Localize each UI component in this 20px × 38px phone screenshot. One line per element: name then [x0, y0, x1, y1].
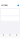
button[interactable]: Me	[13, 34, 20, 36]
staticText: Settings	[1, 4, 8, 6]
button[interactable]: Home	[0, 34, 7, 36]
button[interactable]: Search	[7, 34, 13, 36]
